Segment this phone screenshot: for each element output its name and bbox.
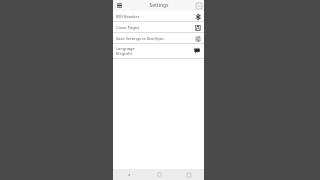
button[interactable]: Menu — [115, 1, 124, 10]
staticText: Language — [116, 46, 135, 51]
button[interactable]: Language — [113, 44, 204, 58]
button[interactable]: BIO Readers — [113, 11, 204, 21]
staticText: BIO Readers — [116, 14, 194, 19]
staticText: Save Settings to BoniSync — [116, 36, 194, 41]
button[interactable]: Home — [144, 169, 174, 180]
staticText: Cover Pages — [116, 25, 194, 30]
button[interactable]: Cover Pages — [113, 22, 204, 32]
button[interactable]: Recent apps — [174, 169, 204, 180]
button[interactable]: More options — [195, 2, 202, 9]
button[interactable]: Back — [113, 169, 144, 180]
staticText: Settings — [149, 2, 169, 9]
button[interactable]: Save Settings to BoniSync — [113, 33, 204, 43]
staticText: (English) — [116, 51, 133, 56]
